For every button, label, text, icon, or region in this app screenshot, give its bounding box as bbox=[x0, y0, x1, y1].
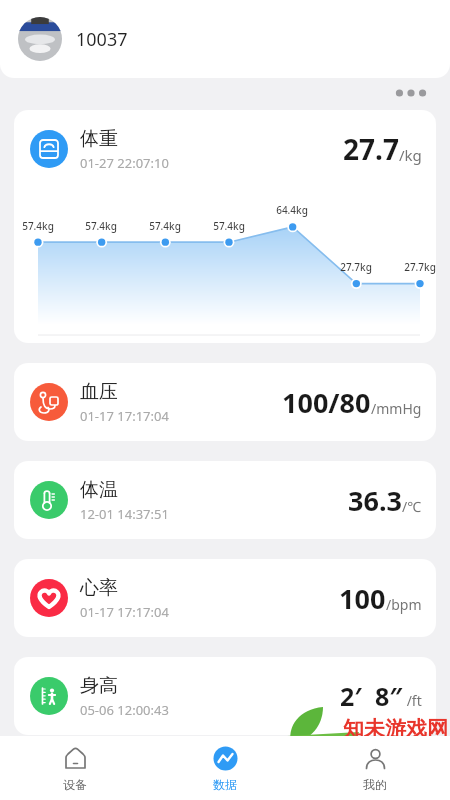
staticText: 01-17 17:17:04 bbox=[80, 407, 169, 425]
staticText: 心率 bbox=[80, 576, 118, 600]
staticText: /kg bbox=[399, 145, 422, 165]
staticText: 57.4kg bbox=[22, 219, 54, 233]
button[interactable]: 我的 bbox=[300, 736, 450, 800]
staticText: 27.7kg bbox=[340, 260, 372, 274]
staticText: /ft bbox=[403, 691, 422, 710]
button[interactable]: 设备 bbox=[0, 736, 150, 800]
staticText: 57.4kg bbox=[213, 219, 245, 233]
staticText: 数据 bbox=[213, 777, 237, 792]
button[interactable]: 体温 bbox=[14, 461, 436, 539]
staticText: 体温 bbox=[80, 478, 118, 502]
button[interactable]: 体重 bbox=[14, 110, 436, 343]
staticText: 57.4kg bbox=[85, 219, 117, 233]
button[interactable]: 血压 bbox=[14, 363, 436, 441]
staticText: ZMO28.CN bbox=[343, 749, 446, 776]
staticText: 血压 bbox=[80, 380, 118, 404]
staticText: 我的 bbox=[363, 777, 387, 792]
staticText: 10037 bbox=[76, 27, 128, 52]
button[interactable]: 数据 bbox=[150, 736, 300, 800]
staticText: 设备 bbox=[63, 777, 87, 792]
staticText: /mmHg bbox=[371, 399, 422, 418]
staticText: 身高 bbox=[80, 674, 118, 698]
staticText: 05-06 12:00:43 bbox=[80, 701, 169, 719]
staticText: 01-17 17:17:04 bbox=[80, 603, 169, 621]
staticText: /℃ bbox=[402, 497, 422, 516]
staticText: 100/80 bbox=[282, 384, 371, 421]
button[interactable]: More options bbox=[388, 82, 434, 104]
staticText: 2′ 8″ bbox=[340, 679, 403, 713]
staticText: 体重 bbox=[80, 127, 118, 151]
staticText: 27.7 bbox=[343, 130, 399, 168]
staticText: 知未游戏网 bbox=[343, 716, 448, 742]
staticText: 01-27 22:07:10 bbox=[80, 154, 169, 172]
button[interactable]: 10037 bbox=[0, 0, 450, 78]
staticText: 36.3 bbox=[348, 482, 402, 519]
staticText: /bpm bbox=[386, 595, 422, 614]
staticText: 57.4kg bbox=[149, 219, 181, 233]
staticText: 12-01 14:37:51 bbox=[80, 505, 169, 523]
button[interactable]: 身高 bbox=[14, 657, 436, 735]
staticText: 100 bbox=[339, 580, 386, 617]
staticText: 27.7kg bbox=[404, 260, 436, 274]
staticText: 64.4kg bbox=[276, 203, 308, 217]
button[interactable]: 心率 bbox=[14, 559, 436, 637]
